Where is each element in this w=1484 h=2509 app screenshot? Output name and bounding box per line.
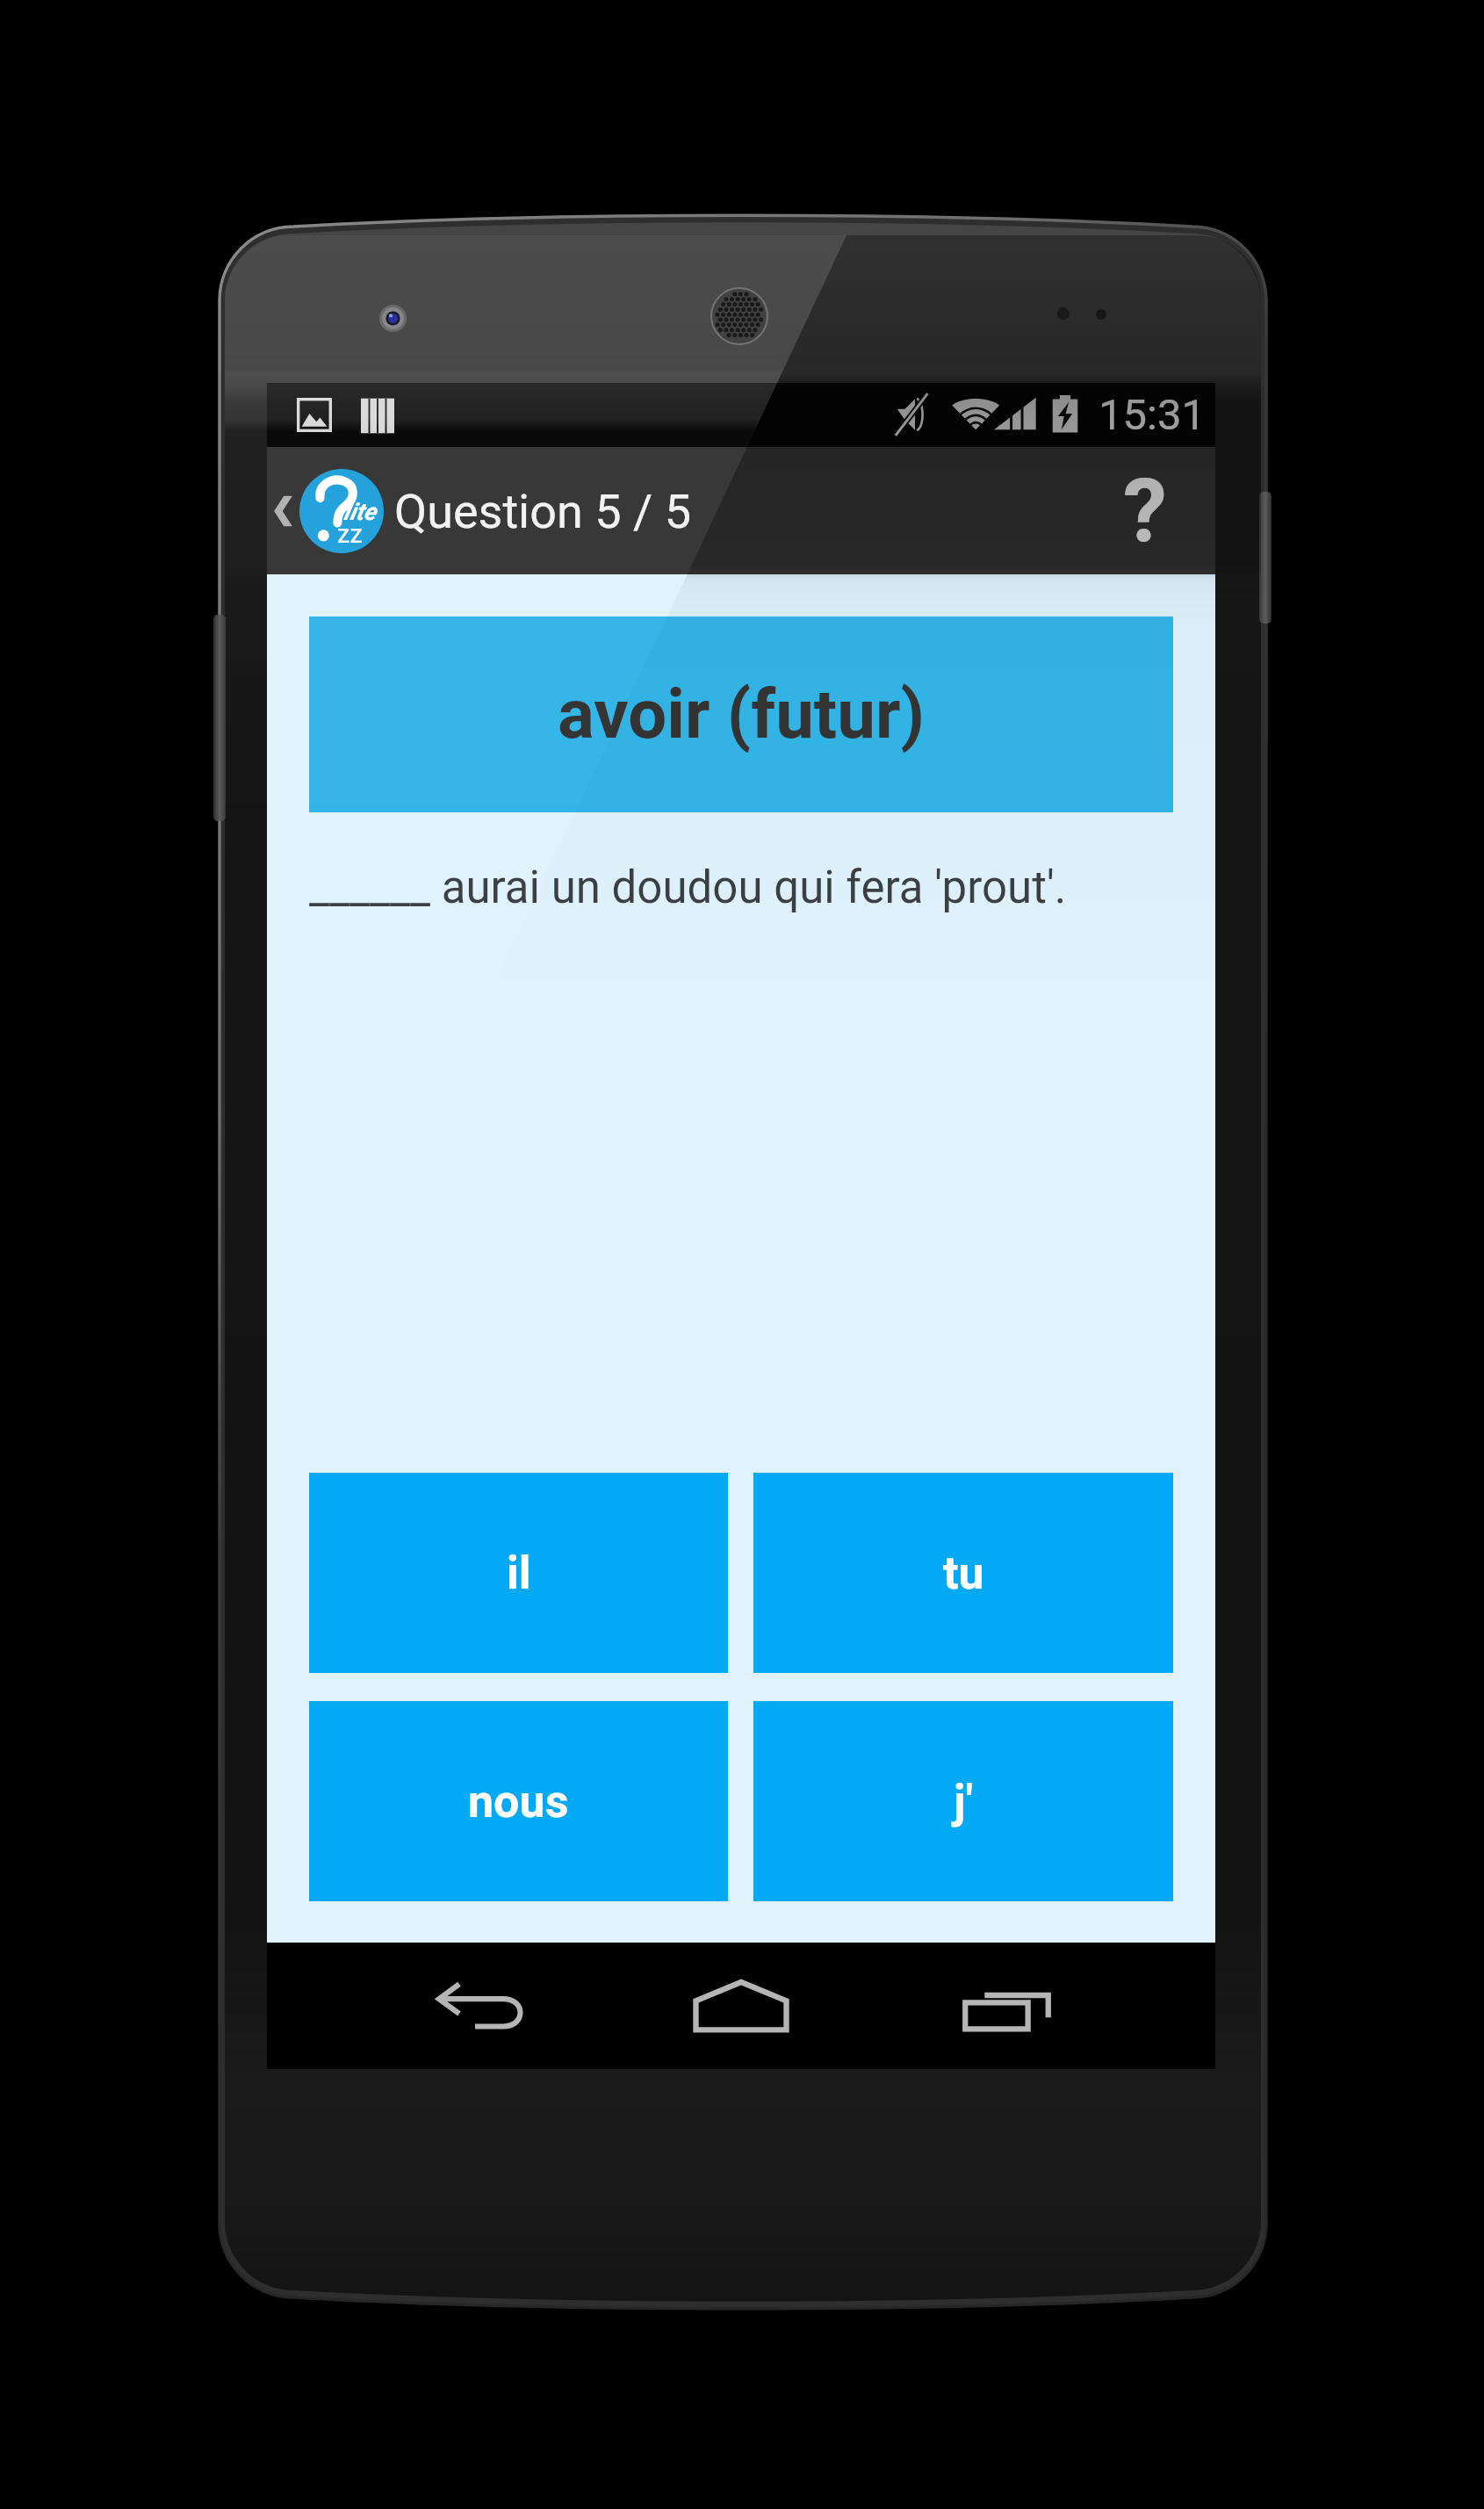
button[interactable]: Up [267,469,384,553]
button[interactable]: nous [309,1701,728,1901]
staticText: avoir (futur) [558,674,925,754]
staticText: Question 5 / 5 [394,484,692,539]
button[interactable]: il [309,1473,728,1673]
staticText: lite [343,498,376,526]
button[interactable]: j' [753,1701,1173,1901]
button[interactable]: Recent apps [918,1943,1094,2069]
button[interactable]: Back [393,1943,568,2069]
button[interactable]: Help [1084,447,1215,574]
staticText: ______ aurai un doudou qui fera 'prout'. [309,862,1067,914]
staticText: zz [337,519,363,549]
staticText: ? [1123,459,1167,562]
staticText: il [507,1546,531,1600]
staticText: j' [954,1775,973,1828]
staticText: 15:31 [1099,390,1207,440]
button[interactable]: Home [653,1943,829,2069]
staticText: tu [943,1546,984,1600]
button[interactable]: avoir (futur) [309,616,1173,812]
button[interactable]: tu [753,1473,1173,1673]
staticText: nous [468,1775,569,1828]
